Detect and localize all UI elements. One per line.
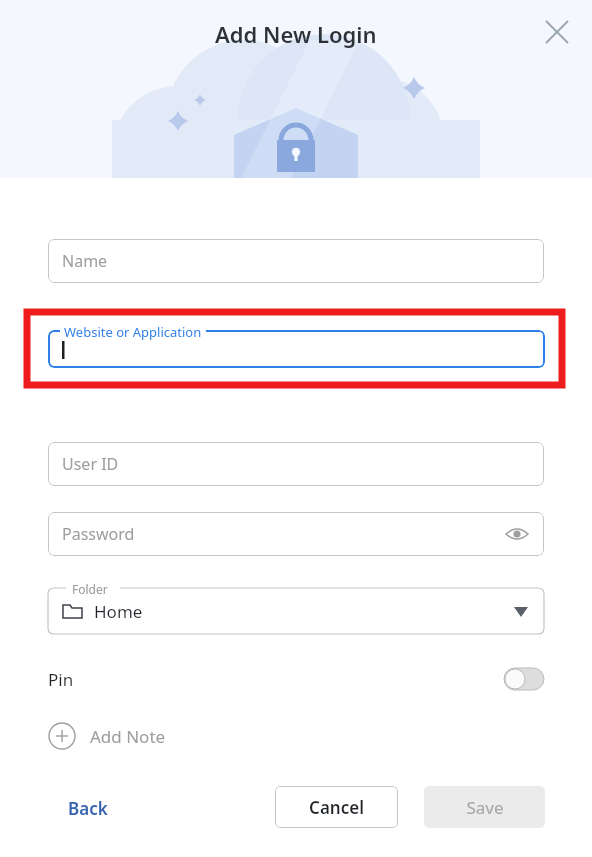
staticText: Pin [48, 668, 74, 691]
staticText: Password [62, 523, 135, 545]
staticText: Save [466, 796, 504, 819]
button[interactable]: Add Note [48, 718, 166, 754]
staticText: Back [68, 797, 108, 820]
button[interactable]: Back [68, 797, 108, 820]
button[interactable]: Pin [48, 662, 544, 696]
staticText: Add Note [90, 725, 166, 748]
button[interactable] [48, 330, 545, 368]
button[interactable]: User ID [48, 442, 544, 486]
staticText: Add New Login [215, 19, 377, 49]
staticText: Home [94, 600, 143, 623]
staticText: Cancel [309, 796, 364, 819]
button[interactable]: Password [48, 512, 544, 556]
button[interactable]: Cancel [275, 786, 398, 828]
staticText: User ID [62, 453, 119, 475]
button[interactable]: Home [48, 588, 544, 634]
other: Show password [506, 523, 528, 545]
button[interactable]: Name [48, 239, 544, 283]
staticText: Name [62, 250, 108, 272]
button[interactable]: Save [424, 786, 545, 828]
button[interactable]: Close [537, 12, 577, 52]
staticText: Website or Application [64, 323, 202, 341]
staticText: Folder [72, 581, 108, 597]
